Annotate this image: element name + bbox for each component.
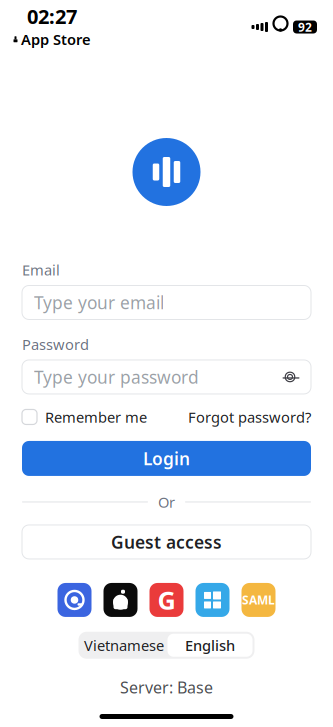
staticText: Login (143, 447, 190, 470)
staticText: 92 (298, 19, 312, 35)
button[interactable]: Sign in with Apple (103, 583, 137, 617)
button[interactable]: Remember me (22, 407, 147, 427)
button[interactable]: Vietnamese (80, 634, 167, 656)
button[interactable]: Show password (275, 362, 305, 392)
staticText: SAML (242, 592, 275, 608)
button[interactable]: Sign in with Google (149, 583, 183, 617)
staticText: 02:27 (27, 3, 77, 30)
staticText: Type your email (34, 291, 164, 314)
staticText: Email (22, 260, 60, 279)
staticText: Forgot password? (188, 407, 311, 427)
button[interactable]: English (167, 634, 252, 657)
button[interactable]: Sign in with Base (57, 583, 91, 617)
staticText: Guest access (111, 530, 222, 553)
staticText: Type your password (34, 365, 199, 388)
button[interactable]: Login (22, 441, 311, 476)
staticText: Vietnamese (84, 635, 164, 655)
button[interactable]: Sign in with SAML (241, 583, 275, 617)
staticText: Server: Base (120, 677, 213, 698)
staticText: Remember me (45, 407, 147, 427)
button[interactable]: Guest access (22, 525, 311, 559)
button[interactable]: Sign in with Microsoft (195, 583, 229, 617)
staticText: English (185, 635, 235, 655)
button[interactable]: Forgot password? (188, 407, 311, 427)
staticText: G (157, 583, 175, 617)
staticText: Or (158, 492, 175, 512)
staticText: Password (22, 334, 89, 354)
staticText: App Store (21, 29, 91, 49)
